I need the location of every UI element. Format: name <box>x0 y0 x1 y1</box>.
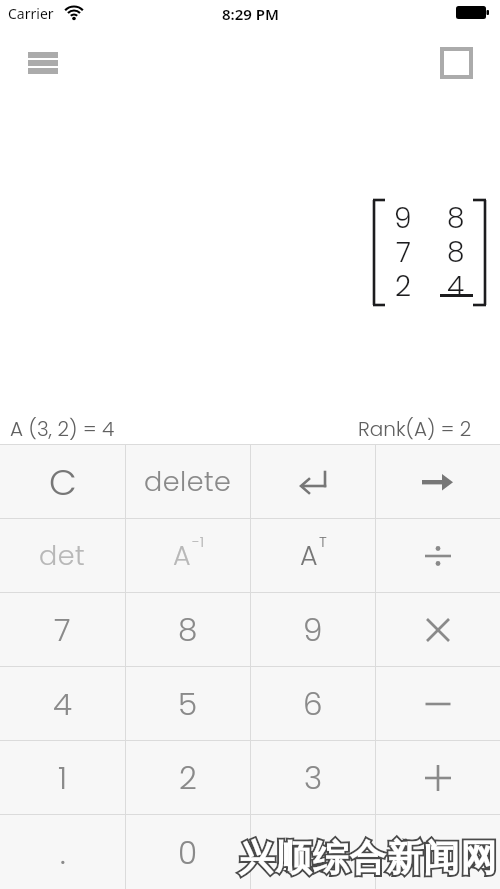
staticText: 4 <box>53 682 73 725</box>
button[interactable]: 3 <box>251 741 375 814</box>
staticText: 3 <box>304 756 323 799</box>
staticText: 6 <box>303 682 323 725</box>
button[interactable]: A <box>126 519 250 592</box>
staticText: A (3, 2) = 4 <box>10 415 115 443</box>
staticText: 8:29 PM <box>222 4 279 24</box>
button[interactable]: A <box>251 519 375 592</box>
button[interactable] <box>376 667 500 740</box>
staticText: 8 <box>178 608 198 651</box>
staticText: 7 <box>396 233 411 267</box>
button[interactable]: 8 <box>126 593 250 666</box>
staticText: 4 <box>447 267 465 301</box>
button[interactable]: 2 <box>126 741 250 814</box>
staticText: 兴顺综合新闻网 <box>238 835 497 880</box>
staticText: Rank(A) = 2 <box>358 415 472 443</box>
staticText: A <box>300 537 318 575</box>
button[interactable]: C <box>0 445 125 518</box>
button[interactable] <box>251 815 375 889</box>
button[interactable]: 0 <box>126 815 250 889</box>
staticText: 0 <box>178 831 198 874</box>
staticText: -1 <box>192 531 205 552</box>
button[interactable] <box>28 52 58 74</box>
button[interactable] <box>376 815 500 889</box>
button[interactable]: 9 <box>251 593 375 666</box>
button[interactable] <box>376 519 500 592</box>
button[interactable]: 4 <box>0 667 125 740</box>
staticText: 9 <box>394 199 412 233</box>
staticText: . <box>60 831 66 874</box>
staticText: 7 <box>54 608 71 651</box>
button[interactable]: det <box>0 519 125 592</box>
button[interactable] <box>440 47 473 79</box>
staticText: 2 <box>395 267 412 301</box>
button[interactable] <box>376 445 500 518</box>
staticText: delete <box>144 463 232 501</box>
staticText: 2 <box>179 756 197 799</box>
button[interactable]: 1 <box>0 741 125 814</box>
button[interactable]: 6 <box>251 667 375 740</box>
staticText: det <box>39 537 86 575</box>
staticText: 9 <box>303 608 323 651</box>
staticText: T <box>319 531 327 552</box>
button[interactable]: 5 <box>126 667 250 740</box>
staticText: 1 <box>58 756 68 799</box>
button[interactable] <box>251 445 375 518</box>
button[interactable]: delete <box>126 445 250 518</box>
staticText: 8 <box>447 199 465 233</box>
staticText: 8 <box>447 233 465 267</box>
staticText: Carrier <box>8 4 54 23</box>
staticText: 兴顺综合新闻网 <box>238 835 497 880</box>
staticText: C <box>49 457 77 507</box>
staticText: 5 <box>178 682 198 725</box>
button[interactable] <box>376 593 500 666</box>
staticText: A <box>173 537 191 575</box>
button[interactable] <box>376 741 500 814</box>
button[interactable]: 7 <box>0 593 125 666</box>
